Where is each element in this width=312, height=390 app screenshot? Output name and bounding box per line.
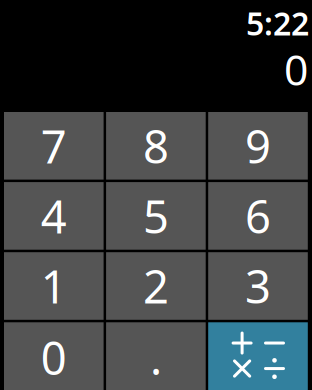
button[interactable]: Operators: [208, 322, 308, 390]
staticText: 7: [41, 116, 67, 176]
button[interactable]: 2: [106, 252, 206, 320]
staticText: 6: [245, 186, 271, 246]
button[interactable]: 9: [208, 112, 308, 180]
staticText: 1: [41, 256, 67, 316]
button[interactable]: 0: [4, 322, 104, 390]
staticText: .: [150, 327, 162, 387]
button[interactable]: 1: [4, 252, 104, 320]
button[interactable]: .: [106, 322, 206, 390]
button[interactable]: 3: [208, 252, 308, 320]
staticText: 0: [284, 41, 308, 97]
staticText: 5: [143, 186, 169, 246]
staticText: 0: [41, 327, 67, 387]
staticText: 2: [143, 256, 169, 316]
staticText: 9: [245, 116, 271, 176]
staticText: 3: [245, 256, 271, 316]
button[interactable]: 7: [4, 112, 104, 180]
button[interactable]: 4: [4, 182, 104, 250]
staticText: 5:22: [246, 2, 309, 44]
button[interactable]: 5: [106, 182, 206, 250]
staticText: 4: [41, 186, 67, 246]
staticText: 8: [143, 116, 169, 176]
button[interactable]: 8: [106, 112, 206, 180]
button[interactable]: 6: [208, 182, 308, 250]
